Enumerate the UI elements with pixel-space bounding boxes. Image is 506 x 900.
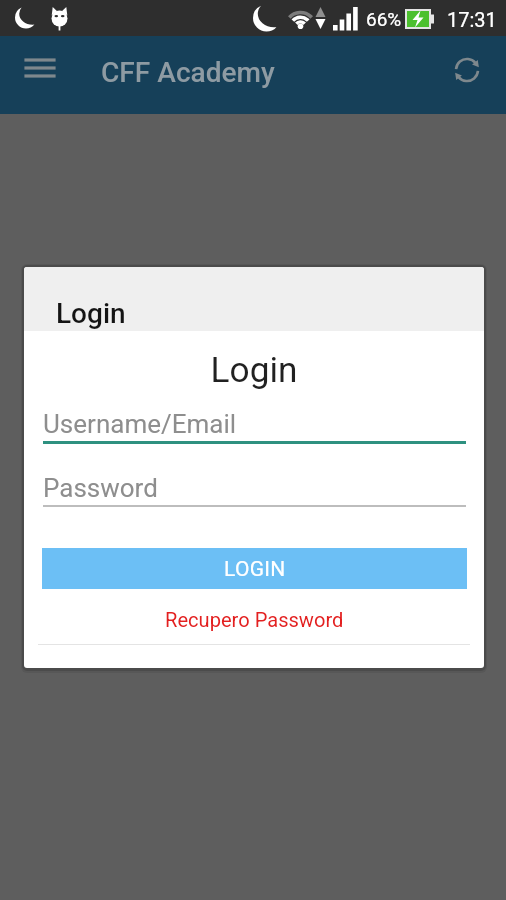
staticText: 17:31 xyxy=(447,8,497,31)
staticText: Password xyxy=(43,473,158,503)
button[interactable]: Refresh xyxy=(441,44,493,96)
staticText: 66% xyxy=(366,8,402,30)
staticText: LOGIN xyxy=(224,557,286,582)
staticText: Login xyxy=(24,349,484,390)
staticText: Recupero Password xyxy=(165,608,344,632)
staticText: Login xyxy=(56,297,126,330)
button[interactable]: Open navigation menu xyxy=(8,42,72,104)
staticText: Username/Email xyxy=(43,409,237,439)
button[interactable]: LOGIN xyxy=(42,548,467,589)
button[interactable]: Recupero Password xyxy=(24,605,484,635)
staticText: CFF Academy xyxy=(101,56,275,89)
